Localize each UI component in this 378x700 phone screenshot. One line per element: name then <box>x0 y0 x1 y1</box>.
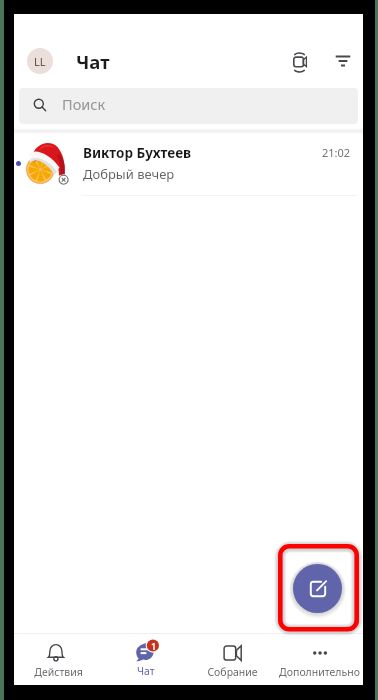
button[interactable]: Начать собрание <box>286 48 314 76</box>
staticText: Добрый вечер <box>83 165 175 183</box>
staticText: Поиск <box>62 94 106 114</box>
staticText: Дополнительно <box>279 665 360 679</box>
button[interactable]: Дополнительно <box>276 634 363 685</box>
staticText: 1 <box>151 640 157 653</box>
button[interactable]: Виктор Бухтеев <box>14 130 363 196</box>
button[interactable]: Фильтр <box>329 48 357 76</box>
button[interactable]: Собрание <box>189 634 276 685</box>
button[interactable]: Профиль <box>27 48 53 74</box>
staticText: Чат <box>137 664 155 678</box>
staticText: Чат <box>76 49 110 74</box>
staticText: Собрание <box>207 665 258 679</box>
button[interactable]: 1 <box>102 634 189 685</box>
staticText: Виктор Бухтеев <box>83 144 192 162</box>
button[interactable]: Действия <box>14 634 102 685</box>
staticText: 21:02 <box>322 145 351 160</box>
button[interactable]: Новый чат <box>293 564 342 613</box>
button[interactable]: Поиск <box>19 88 358 124</box>
staticText: LL <box>34 54 46 69</box>
staticText: Действия <box>34 665 83 679</box>
